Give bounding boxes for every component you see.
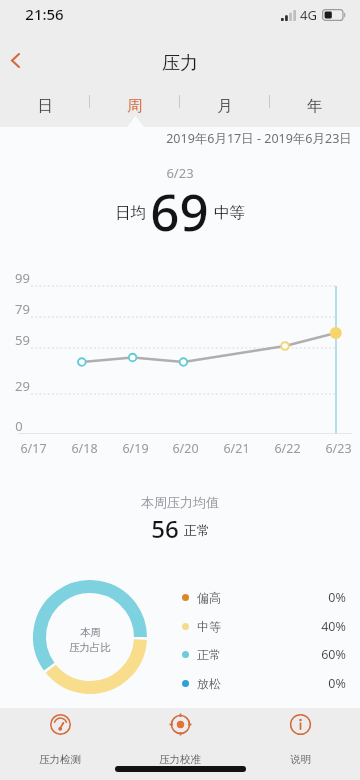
button[interactable]: 压力检测 xyxy=(0,708,120,780)
staticText: 4G xyxy=(300,6,317,24)
staticText: 正常 xyxy=(197,647,221,662)
button[interactable]: 放松 xyxy=(182,675,346,691)
staticText: 日 xyxy=(37,96,53,116)
staticText: 6/18 xyxy=(71,440,98,457)
staticText: 本周 xyxy=(80,626,101,639)
staticText: 中等 xyxy=(214,203,245,223)
staticText: 月 xyxy=(217,96,233,116)
button[interactable]: Back xyxy=(0,30,40,82)
staticText: 年 xyxy=(307,96,323,116)
staticText: 压力校准 xyxy=(159,753,201,766)
button[interactable]: 日 xyxy=(0,82,90,123)
button[interactable]: 年 xyxy=(270,82,360,123)
staticText: 6/23 xyxy=(166,164,194,182)
staticText: 6/23 xyxy=(325,440,352,457)
staticText: 0% xyxy=(328,675,346,691)
staticText: 6/19 xyxy=(122,440,149,457)
staticText: 说明 xyxy=(290,753,311,766)
staticText: 29 xyxy=(15,377,30,395)
staticText: 21:56 xyxy=(25,4,64,24)
staticText: 中等 xyxy=(197,619,221,634)
staticText: 0% xyxy=(328,589,346,605)
staticText: 压力占比 xyxy=(69,641,111,654)
button[interactable]: 说明 xyxy=(240,708,360,780)
staticText: 79 xyxy=(15,300,30,318)
staticText: 99 xyxy=(15,269,30,287)
button[interactable]: 月 xyxy=(180,82,270,123)
button[interactable]: 偏高 xyxy=(182,589,346,605)
button[interactable]: 正常 xyxy=(182,646,346,662)
staticText: 日均 xyxy=(115,203,146,223)
button[interactable]: 压力校准 xyxy=(120,708,240,780)
staticText: 56 xyxy=(151,512,179,540)
staticText: 59 xyxy=(15,331,30,349)
staticText: 周 xyxy=(127,96,143,116)
staticText: 40% xyxy=(321,618,346,634)
staticText: 正常 xyxy=(184,522,210,538)
staticText: 6/22 xyxy=(274,440,301,457)
staticText: 2019年6月17日 - 2019年6月23日 xyxy=(166,130,352,147)
button[interactable]: 周 xyxy=(90,82,180,123)
staticText: 压力 xyxy=(162,52,198,75)
staticText: 6/20 xyxy=(172,440,199,457)
staticText: 压力检测 xyxy=(39,753,81,766)
staticText: 放松 xyxy=(197,676,221,691)
staticText: 0 xyxy=(15,417,23,435)
staticText: 60% xyxy=(321,646,346,662)
staticText: 本周压力均值 xyxy=(141,494,219,510)
staticText: 6/17 xyxy=(20,440,47,457)
button[interactable]: 中等 xyxy=(182,618,346,634)
staticText: 6/21 xyxy=(223,440,250,457)
staticText: 69 xyxy=(150,176,209,232)
staticText: 偏高 xyxy=(197,590,221,605)
